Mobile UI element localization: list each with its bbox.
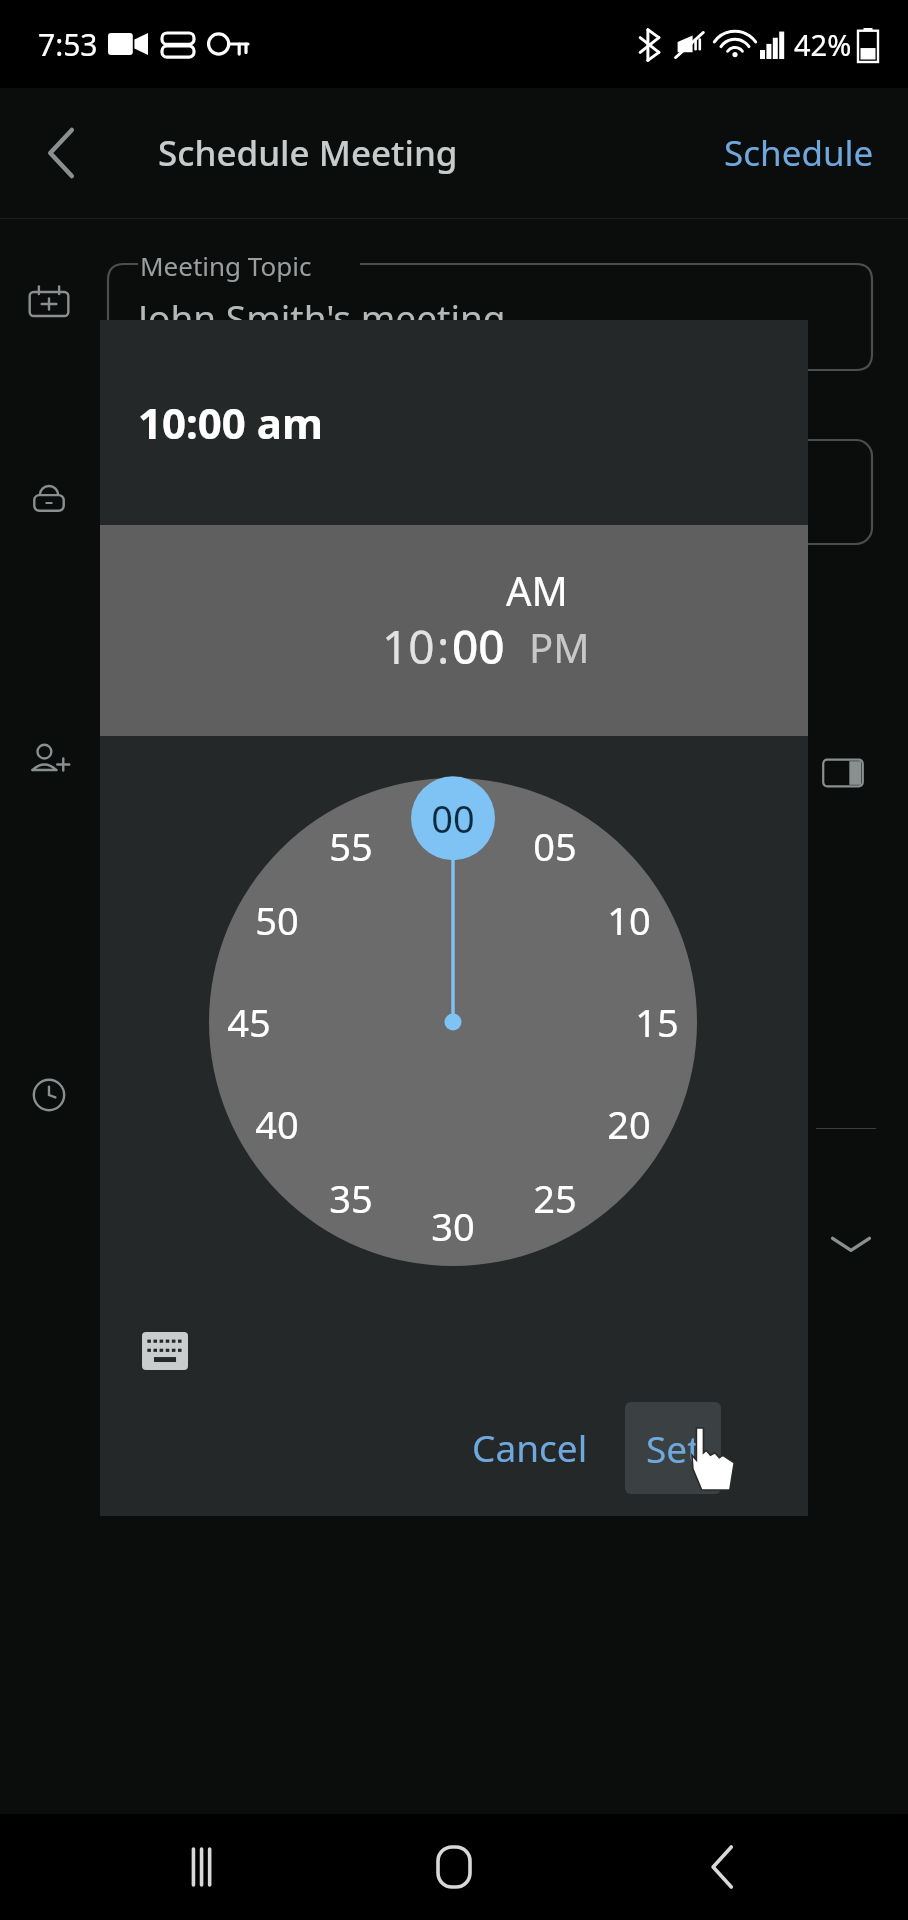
button[interactable]: Add date (26, 281, 72, 327)
staticText: 10 (607, 894, 651, 946)
staticText: 00 (452, 615, 505, 678)
button[interactable]: Back (690, 1834, 756, 1900)
staticText: : (437, 615, 450, 678)
staticText: John Smith's meeting (138, 292, 506, 342)
staticText: 50 (255, 894, 299, 946)
staticText: 30 (431, 1200, 475, 1252)
staticText: 05 (533, 820, 577, 872)
staticText: 40 (255, 1098, 299, 1150)
button[interactable]: Recent apps (172, 1834, 238, 1900)
staticText: 25 (533, 1172, 577, 1224)
button[interactable]: PM (525, 616, 594, 678)
button[interactable]: Schedule (714, 119, 884, 187)
staticText: Set (646, 1423, 701, 1473)
button[interactable]: Cancel (450, 1402, 610, 1492)
button[interactable]: 00 (450, 615, 507, 678)
staticText: Meeting Topic (140, 248, 312, 283)
button[interactable]: Layout (820, 750, 866, 796)
staticText: 7:53 (38, 24, 98, 65)
staticText: AM (506, 563, 568, 617)
button[interactable]: Add participants (26, 736, 72, 782)
staticText: Schedule Meeting (158, 129, 458, 177)
button[interactable]: Switch to text input (134, 1320, 196, 1382)
staticText: 15 (635, 996, 679, 1048)
staticText: Schedule (724, 129, 874, 177)
button[interactable]: Set (625, 1402, 721, 1494)
button[interactable]: Back (24, 115, 100, 191)
staticText: 45 (227, 996, 271, 1048)
button[interactable]: Time zone (26, 1072, 72, 1118)
staticText: 55 (329, 820, 373, 872)
button[interactable]: Home (418, 1831, 490, 1903)
button[interactable]: AM (500, 557, 574, 623)
staticText: 20 (607, 1098, 651, 1150)
button[interactable]: 10 (380, 615, 437, 678)
button[interactable]: Expand (828, 1220, 874, 1266)
staticText: Cancel (472, 1422, 588, 1472)
staticText: 10 (382, 615, 435, 678)
button[interactable]: Minute clock dial (209, 778, 697, 1266)
staticText: 10:00 am (138, 394, 323, 451)
staticText: 42% (794, 25, 852, 64)
button[interactable]: Password (26, 474, 72, 520)
staticText: PM (529, 620, 590, 674)
staticText: 35 (329, 1172, 373, 1224)
staticText: 00 (431, 792, 475, 844)
